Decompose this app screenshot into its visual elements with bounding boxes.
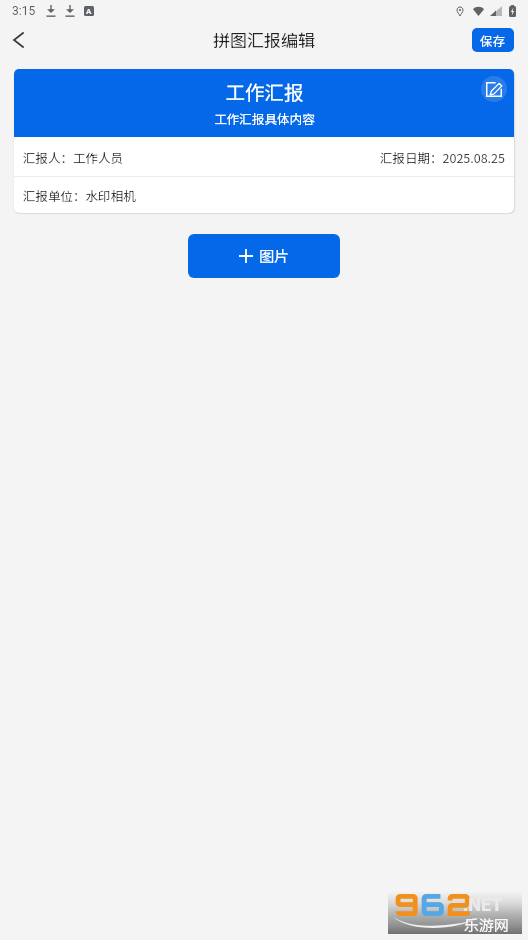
staticText: 保存: [480, 31, 506, 49]
staticText: 汇报单位：水印相机: [23, 186, 136, 204]
button[interactable]: 图片: [188, 234, 340, 278]
staticText: 2: [446, 885, 472, 924]
staticText: .NET: [463, 894, 503, 915]
staticText: 汇报日期：2025.08.25: [380, 148, 505, 166]
staticText: 6: [420, 885, 446, 924]
staticText: 3:15: [12, 4, 36, 18]
staticText: 工作汇报具体内容: [214, 109, 315, 127]
staticText: 乐游网: [464, 914, 510, 936]
button[interactable]: 汇报人：工作人员: [14, 137, 514, 176]
button[interactable]: 汇报单位：水印相机: [14, 177, 514, 213]
staticText: 图片: [259, 245, 290, 267]
staticText: 9: [394, 885, 420, 924]
button[interactable]: 保存: [472, 28, 514, 52]
staticText: 汇报人：工作人员: [23, 148, 124, 166]
staticText: 工作汇报: [225, 77, 304, 105]
button[interactable]: Back: [0, 22, 40, 57]
staticText: 拼图汇报编辑: [213, 27, 315, 52]
button[interactable]: Edit: [481, 76, 507, 102]
staticText: A: [86, 7, 92, 16]
